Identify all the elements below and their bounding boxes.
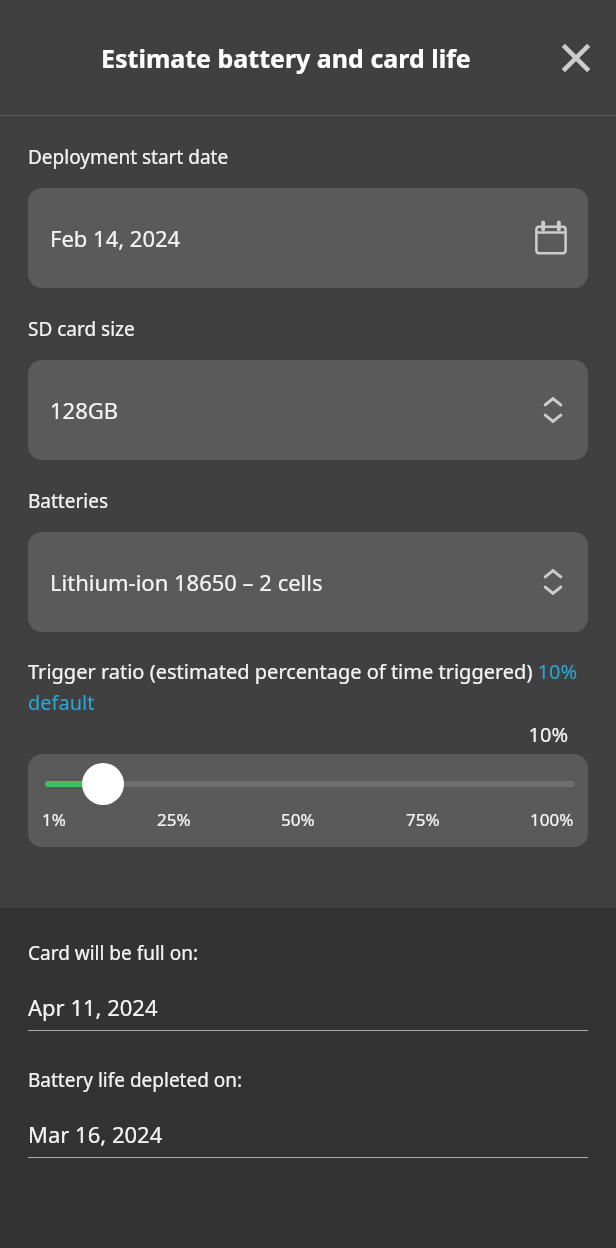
- staticText: Mar 16, 2024: [28, 1119, 163, 1149]
- staticText: 25%: [157, 808, 191, 831]
- staticText: Lithium-ion 18650 – 2 cells: [50, 567, 323, 597]
- button[interactable]: Trigger ratio slider: [28, 754, 588, 847]
- button[interactable]: Lithium-ion 18650 – 2 cells: [28, 532, 588, 632]
- staticText: 1%: [42, 808, 66, 831]
- staticText: 100%: [530, 808, 574, 831]
- button[interactable]: Feb 14, 2024: [28, 188, 588, 288]
- staticText: Deployment start date: [28, 144, 229, 170]
- staticText: 50%: [281, 808, 315, 831]
- staticText: Battery life depleted on:: [28, 1067, 243, 1093]
- staticText: Apr 11, 2024: [28, 992, 158, 1022]
- staticText: Estimate battery and card life: [101, 41, 471, 75]
- staticText: Feb 14, 2024: [50, 223, 181, 253]
- button[interactable]: Close: [551, 33, 601, 83]
- button[interactable]: 128GB: [28, 360, 588, 460]
- staticText: 10%: [28, 721, 568, 748]
- staticText: SD card size: [28, 316, 135, 342]
- staticText: Trigger ratio (estimated percentage of t…: [28, 658, 588, 715]
- staticText: 128GB: [50, 395, 119, 425]
- staticText: 75%: [406, 808, 440, 831]
- staticText: Card will be full on:: [28, 940, 199, 966]
- staticText: Batteries: [28, 488, 109, 514]
